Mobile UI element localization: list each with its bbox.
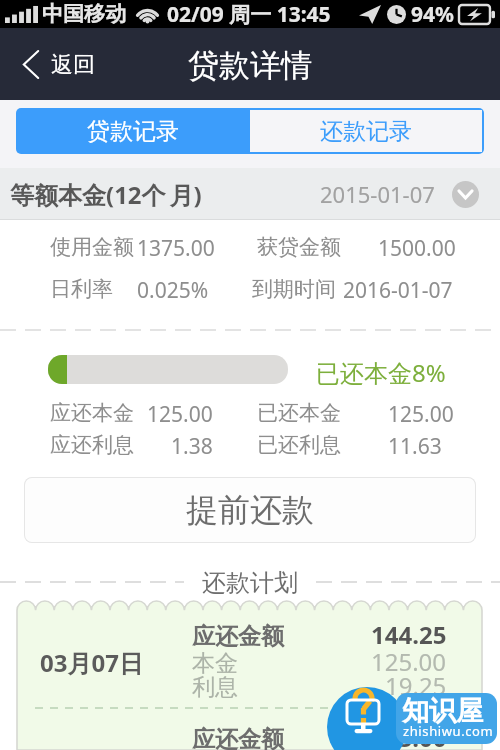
staticText: 11.63 <box>388 432 442 461</box>
staticText: 还款记录 <box>320 117 412 146</box>
staticText: 143.00 <box>371 721 447 750</box>
staticText: 已还本金 <box>257 400 341 426</box>
button[interactable]: 展开 <box>452 181 479 208</box>
staticText: 125.00 <box>371 645 447 678</box>
staticText: 利息 <box>192 673 238 702</box>
staticText: 应还利息 <box>50 432 134 458</box>
button[interactable]: 还款记录 <box>250 110 482 152</box>
staticText: 等额本金(12个 月) <box>10 178 202 211</box>
staticText: zhishiwu.com <box>403 722 494 740</box>
button[interactable]: 提前还款 <box>24 477 476 543</box>
staticText: 2015-01-07 <box>320 179 435 209</box>
button[interactable]: 返回 <box>17 42 101 87</box>
staticText: 到期时间 <box>252 276 336 302</box>
staticText: 02/09 周一 13:45 <box>167 0 331 28</box>
button[interactable]: 04月07日 <box>17 704 482 750</box>
staticText: 144.25 <box>371 618 447 651</box>
staticText: 应还金额 <box>192 725 284 750</box>
staticText: 1500.00 <box>378 234 456 263</box>
staticText: 使用金额 <box>50 234 134 260</box>
staticText: 应还金额 <box>192 622 284 651</box>
staticText: 贷款记录 <box>87 117 179 146</box>
staticText: 已还本金8% <box>316 356 446 389</box>
staticText: 还款计划 <box>202 568 298 598</box>
button[interactable]: 03月07日 <box>17 601 482 704</box>
staticText: 获贷金额 <box>257 234 341 260</box>
staticText: 125.00 <box>147 400 213 429</box>
staticText: 125.00 <box>371 748 447 750</box>
staticText: 19.25 <box>385 669 447 702</box>
staticText: 日利率 <box>50 276 113 302</box>
staticText: 1.38 <box>171 432 213 461</box>
staticText: 中国移动 <box>42 1 126 27</box>
staticText: 03月07日 <box>40 646 143 679</box>
staticText: 94% <box>411 0 454 28</box>
staticText: 2016-01-07 <box>343 276 453 305</box>
staticText: 1375.00 <box>137 234 215 263</box>
staticText: 知识屋 <box>402 694 483 728</box>
staticText: 提前还款 <box>186 490 314 530</box>
staticText: 应还本金 <box>50 400 134 426</box>
staticText: 本金 <box>192 649 238 678</box>
staticText: 贷款详情 <box>188 46 312 85</box>
staticText: 0.025% <box>137 276 209 305</box>
staticText: 125.00 <box>388 400 454 429</box>
button[interactable]: 贷款记录 <box>16 108 250 154</box>
staticText: 返回 <box>51 51 95 79</box>
staticText: 已还利息 <box>257 432 341 458</box>
